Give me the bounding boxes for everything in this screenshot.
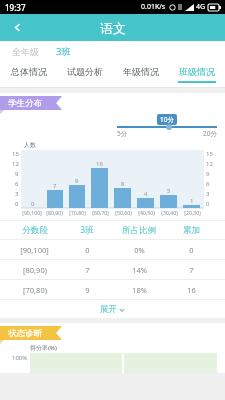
staticText: 总体情况 <box>11 66 47 77</box>
staticText: [40,50) <box>138 209 155 216</box>
staticText: 0.01K/s <box>141 2 166 12</box>
staticText: 12 <box>12 160 19 168</box>
staticText: 19:37 <box>5 2 26 13</box>
staticText: 15 <box>206 150 213 158</box>
staticText: 试题分析 <box>67 66 103 77</box>
staticText: [30,40) <box>161 209 178 216</box>
staticText: 16 <box>96 160 103 168</box>
staticText: 展开 <box>100 304 117 315</box>
staticText: 15 <box>12 150 19 158</box>
staticText: 0 <box>189 245 194 255</box>
staticText: 4 <box>144 190 148 198</box>
button[interactable]: [80,90) <box>8 260 217 279</box>
button[interactable]: 总体情况 <box>0 62 57 87</box>
button[interactable]: [90,100] <box>8 240 217 259</box>
staticText: 3班 <box>56 45 71 58</box>
staticText: 3 <box>206 190 210 198</box>
staticText: [20,30) <box>184 209 201 216</box>
staticText: 累加 <box>183 225 200 236</box>
staticText: 7 <box>189 265 194 275</box>
staticText: 9 <box>75 177 79 185</box>
staticText: 8 <box>121 180 125 188</box>
staticText: 状态诊断 <box>8 328 42 339</box>
button[interactable]: 全年级 <box>10 44 41 59</box>
staticText: 所占比例 <box>122 225 156 236</box>
staticText: 100% <box>12 354 28 362</box>
staticText: [50,60) <box>115 209 132 216</box>
staticText: 0 <box>206 200 210 208</box>
staticText: 全年级 <box>12 46 39 57</box>
staticText: 人数 <box>24 141 36 149</box>
staticText: [80,90) <box>23 265 47 275</box>
staticText: 班级情况 <box>179 66 215 77</box>
staticText: 14% <box>132 265 147 275</box>
staticText: 16 <box>187 285 196 295</box>
staticText: 9 <box>206 170 210 178</box>
staticText: 年级情况 <box>123 66 159 77</box>
staticText: [90,100] <box>22 209 42 216</box>
button[interactable]: 3班 <box>54 43 73 60</box>
staticText: 语文 <box>100 20 126 36</box>
staticText: 5分 <box>117 129 128 138</box>
staticText: [60,70) <box>92 209 109 216</box>
button[interactable]: [70,80) <box>8 280 217 299</box>
staticText: 9 <box>85 285 90 295</box>
button[interactable]: Back <box>0 14 34 41</box>
staticText: 7 <box>85 265 90 275</box>
staticText: 3班 <box>80 224 94 236</box>
button[interactable]: 班级情况 <box>169 62 225 87</box>
staticText: 1 <box>190 197 194 205</box>
staticText: 6 <box>206 180 210 188</box>
staticText: 5 <box>167 187 171 195</box>
staticText: 0 <box>31 200 35 208</box>
button[interactable]: 年级情况 <box>113 62 169 87</box>
staticText: 20分 <box>203 129 217 138</box>
staticText: 得分率(%) <box>30 344 57 352</box>
staticText: 7 <box>53 182 57 190</box>
staticText: 0% <box>134 245 145 255</box>
staticText: 12 <box>206 160 213 168</box>
staticText: [70,80) <box>23 285 47 295</box>
staticText: 4G <box>196 2 206 12</box>
staticText: 6 <box>15 180 19 188</box>
button[interactable]: 试题分析 <box>57 62 113 87</box>
staticText: 10分 <box>160 115 174 124</box>
staticText: [70,80) <box>69 209 86 216</box>
staticText: 3 <box>15 190 19 198</box>
staticText: 分数段 <box>22 225 48 236</box>
staticText: 0 <box>15 200 19 208</box>
staticText: 学生分布 <box>8 98 42 109</box>
button[interactable]: 展开 <box>0 300 225 318</box>
staticText: [90,100] <box>20 245 49 255</box>
staticText: 0 <box>85 245 90 255</box>
button[interactable] <box>166 124 172 130</box>
staticText: [80,90) <box>46 209 63 216</box>
staticText: 18% <box>132 285 147 295</box>
staticText: 9 <box>15 170 19 178</box>
